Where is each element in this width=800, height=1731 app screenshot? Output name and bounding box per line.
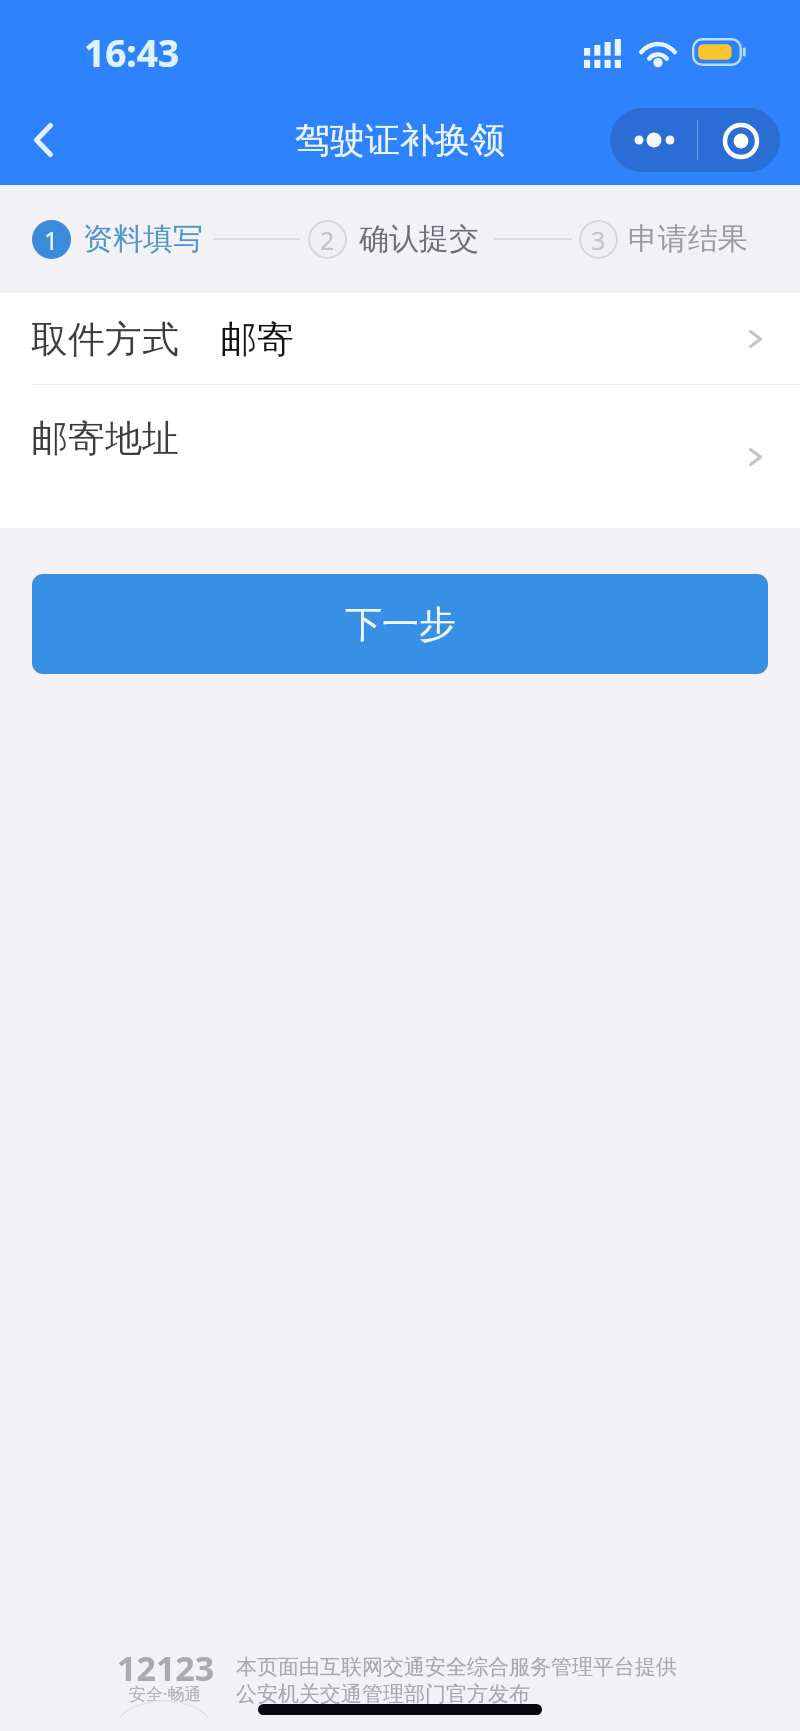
button[interactable]: Back [0,95,86,185]
staticText: 安全·畅通 [129,1682,202,1705]
staticText: 资料填写 [83,220,203,258]
button[interactable]: Close mini program [698,108,780,172]
staticText: 3 [591,223,606,257]
staticText: 本页面由互联网交通安全综合服务管理平台提供 [236,1654,677,1680]
staticText: 申请结果 [628,220,748,258]
staticText: 取件方式 [31,316,179,363]
staticText: 邮寄 [220,316,294,363]
staticText: 公安机关交通管理部门官方发布 [236,1681,530,1707]
staticText: 确认提交 [359,220,479,258]
button[interactable]: 邮寄地址 [0,385,800,528]
staticText: 12123 [117,1645,215,1691]
staticText: 2 [320,223,335,257]
button[interactable]: More options [610,108,697,172]
button[interactable]: 取件方式 [0,293,800,385]
staticText: 驾驶证补换领 [295,118,505,162]
staticText: 16:43 [84,27,180,77]
staticText: 邮寄地址 [31,415,179,462]
button[interactable]: 下一步 [32,574,768,674]
staticText: 下一步 [345,601,456,648]
staticText: 1 [44,223,59,257]
